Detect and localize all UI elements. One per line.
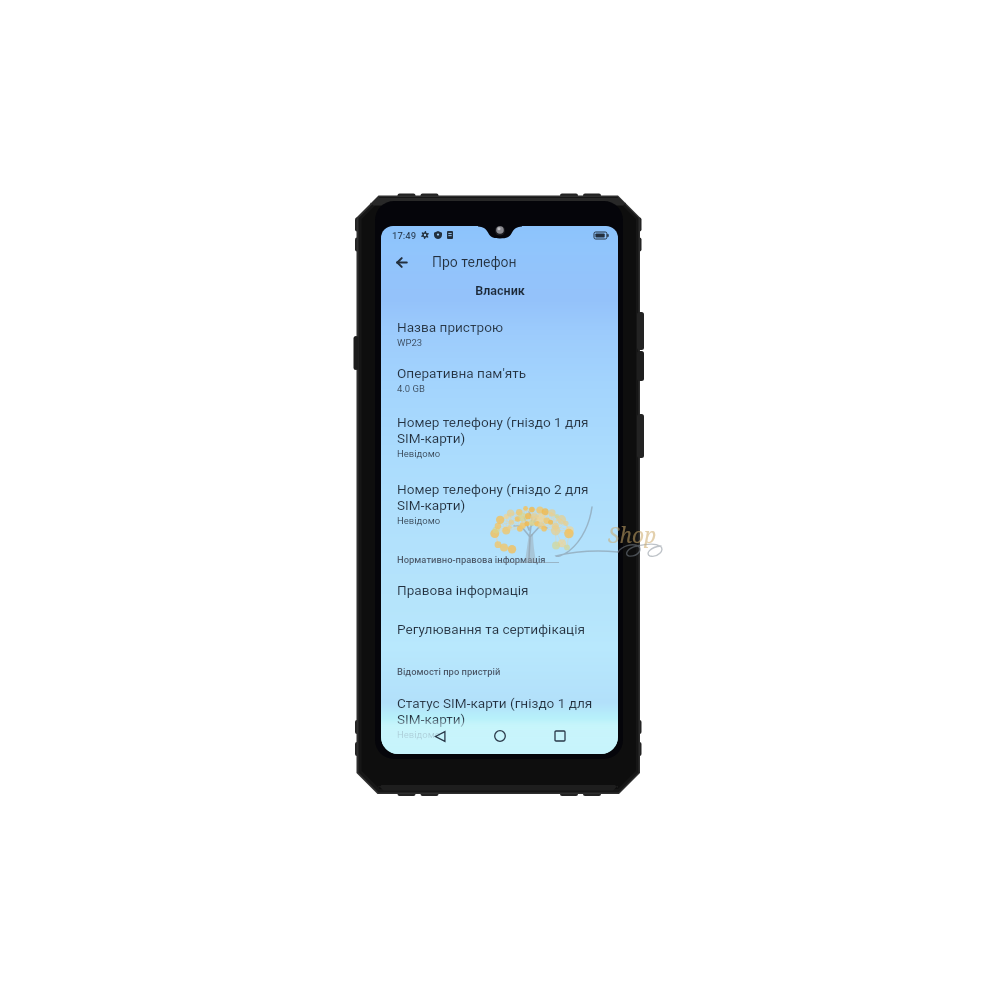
staticText: Невідомо: [397, 729, 441, 740]
button[interactable]: Регулювання та сертифікація: [381, 598, 618, 637]
staticText: Shop: [608, 521, 657, 550]
staticText: Невідомо: [397, 448, 441, 459]
button[interactable]: Back: [425, 721, 455, 751]
staticText: Статус SIM-карти (гніздо 1 для SIM-карти…: [397, 695, 596, 727]
button[interactable]: Оперативна пам'ять: [381, 348, 618, 394]
staticText: Відомості про пристрій: [397, 666, 501, 677]
button[interactable]: Правова інформація: [381, 565, 618, 598]
staticText: Власник: [475, 283, 525, 298]
button[interactable]: Статус SIM-карти (гніздо 1 для SIM-карти…: [381, 677, 618, 740]
button[interactable]: Номер телефону (гніздо 1 для SIM-карти): [381, 394, 618, 459]
staticText: Оперативна пам'ять: [397, 365, 527, 381]
button[interactable]: Номер телефону (гніздо 2 для SIM-карти): [381, 459, 618, 526]
button[interactable]: Home: [485, 721, 515, 751]
staticText: WP23: [397, 337, 423, 348]
staticText: Номер телефону (гніздо 1 для SIM-карти): [397, 414, 596, 446]
staticText: Номер телефону (гніздо 2 для SIM-карти): [397, 481, 596, 513]
staticText: Правова інформація: [397, 582, 529, 598]
staticText: Про телефон: [432, 254, 517, 270]
staticText: 4.0 GB: [397, 383, 425, 394]
staticText: Нормативно-правова інформація: [397, 554, 546, 565]
button[interactable]: Назва пристрою: [381, 298, 618, 348]
staticText: 17:49: [392, 230, 417, 241]
button[interactable]: Back: [389, 250, 413, 274]
staticText: Регулювання та сертифікація: [397, 621, 585, 637]
staticText: Невідомо: [397, 515, 441, 526]
button[interactable]: Recents: [545, 721, 575, 751]
staticText: Назва пристрою: [397, 319, 503, 335]
